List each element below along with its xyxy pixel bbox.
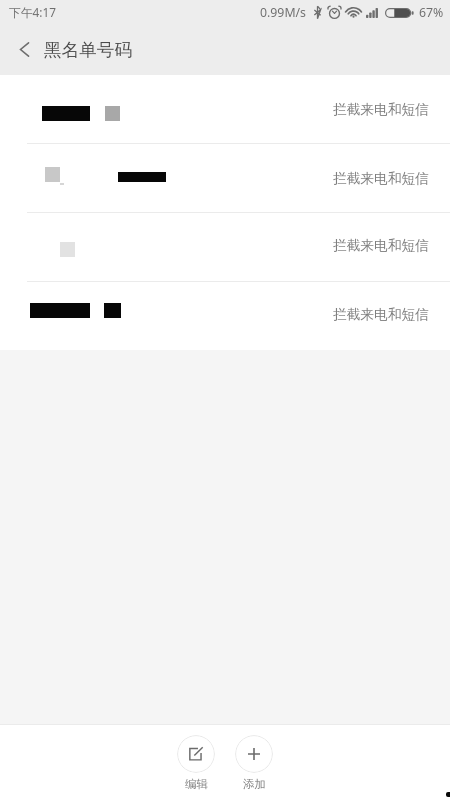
button[interactable]: 拦截来电和短信 bbox=[0, 75, 450, 143]
staticText: 下午4:17 bbox=[9, 4, 56, 20]
staticText: 黑名单号码 bbox=[44, 39, 132, 61]
staticText: 添加 bbox=[243, 777, 266, 791]
button[interactable]: Back bbox=[0, 28, 42, 75]
button[interactable]: 拦截来电和短信 bbox=[0, 144, 450, 212]
staticText: 编辑 bbox=[185, 777, 208, 791]
staticText: 0.99M/s bbox=[260, 4, 307, 21]
button[interactable]: 拦截来电和短信 bbox=[0, 213, 450, 281]
staticText: 拦截来电和短信 bbox=[333, 170, 429, 187]
button[interactable]: 拦截来电和短信 bbox=[0, 282, 450, 350]
staticText: 拦截来电和短信 bbox=[333, 101, 429, 118]
staticText: 67% bbox=[419, 4, 444, 21]
staticText: 拦截来电和短信 bbox=[333, 306, 429, 323]
button[interactable]: Edit bbox=[177, 735, 215, 791]
button[interactable]: Add bbox=[235, 735, 273, 791]
staticText: 拦截来电和短信 bbox=[333, 237, 429, 254]
